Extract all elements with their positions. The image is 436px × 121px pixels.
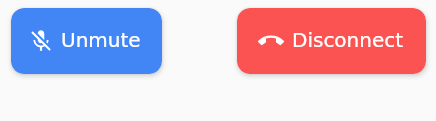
other: Disconnect (258, 28, 284, 54)
other: Unmute (28, 28, 54, 54)
staticText: Unmute (61, 28, 141, 51)
button[interactable]: Unmute (11, 8, 162, 74)
staticText: Disconnect (292, 28, 404, 51)
button[interactable]: Disconnect (237, 8, 426, 74)
